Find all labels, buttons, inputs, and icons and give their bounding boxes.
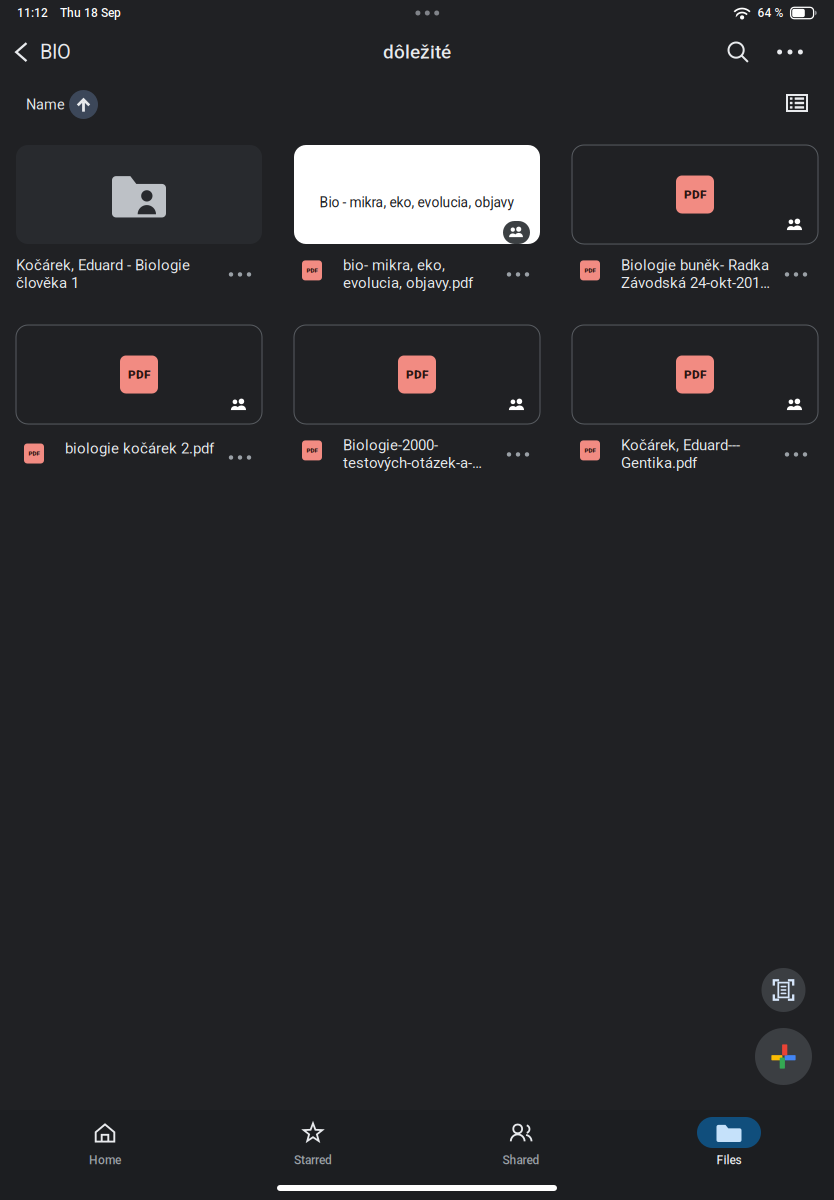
staticText: 64 %	[758, 6, 784, 20]
button[interactable]: Shared	[417, 1110, 625, 1172]
staticText: Name	[26, 96, 65, 113]
button[interactable]: BIO	[0, 26, 81, 78]
button[interactable]: Switch to list view	[772, 78, 822, 128]
staticText: Shared	[502, 1153, 539, 1167]
staticText: PDF	[306, 447, 317, 454]
button[interactable]: Scan document	[761, 968, 805, 1012]
button[interactable]: Create new	[755, 1028, 812, 1085]
staticText: Starred	[294, 1153, 332, 1167]
staticText: PDF	[406, 368, 428, 381]
staticText: bio- mikra, eko, evolucia, objavy.pdf	[343, 256, 473, 292]
button[interactable]: More options	[764, 26, 816, 78]
staticText: BIO	[40, 40, 71, 64]
button[interactable]: Home	[1, 1110, 209, 1172]
staticText: 11:12	[17, 6, 48, 20]
button[interactable]: Search	[712, 26, 764, 78]
staticText: dôležité	[383, 41, 451, 63]
staticText: PDF	[684, 368, 706, 381]
button[interactable]: Files	[625, 1110, 833, 1172]
staticText: PDF	[684, 188, 706, 201]
button[interactable]: Starred	[209, 1110, 417, 1172]
staticText: PDF	[306, 267, 317, 274]
staticText: Thu 18 Sep	[60, 6, 121, 20]
staticText: PDF	[584, 447, 595, 454]
staticText: PDF	[128, 368, 150, 381]
staticText: Biologie buněk- Radka Závodská 24-okt-20…	[621, 256, 770, 292]
staticText: Home	[89, 1153, 121, 1167]
staticText: Biologie-2000-testových-otázek-a-…	[343, 436, 482, 472]
staticText: Files	[716, 1153, 741, 1167]
staticText: biologie kočárek 2.pdf	[65, 439, 214, 457]
staticText: PDF	[584, 267, 595, 274]
button[interactable]: Name	[0, 78, 110, 128]
staticText: PDF	[28, 450, 39, 457]
staticText: Bio - mikra, eko, evolucia, objavy	[319, 194, 514, 211]
staticText: Kočárek, Eduard - Biologie člověka 1	[16, 256, 190, 292]
staticText: Kočárek, Eduard--- Gentika.pdf	[621, 436, 740, 472]
